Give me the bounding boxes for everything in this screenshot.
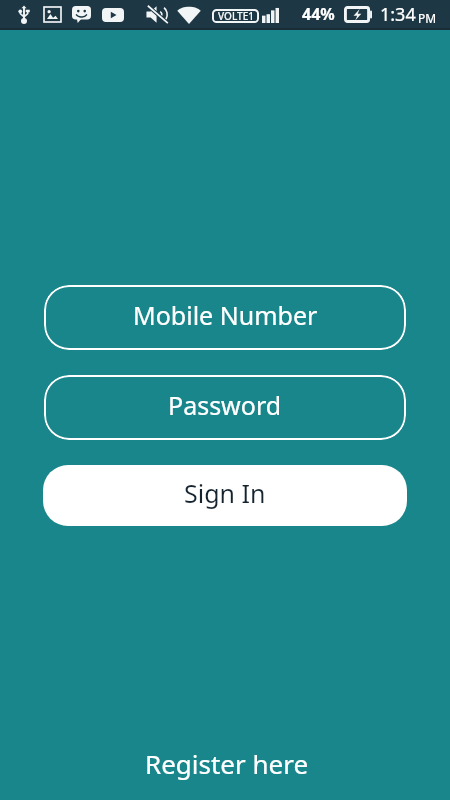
- staticText: Sign In: [184, 476, 266, 510]
- other: New message: [72, 6, 91, 23]
- other: YouTube: [102, 8, 124, 22]
- staticText: 44%: [302, 3, 335, 25]
- other: Ringer muted: [146, 5, 169, 24]
- other: Screenshot captured: [44, 7, 61, 22]
- other: USB connected: [18, 5, 30, 24]
- button[interactable]: Register here: [137, 741, 317, 786]
- button[interactable]: Mobile Number: [44, 285, 406, 350]
- other: VoLTE: [212, 9, 259, 23]
- other: Mobile signal: [262, 7, 279, 23]
- button[interactable]: Sign In: [43, 465, 407, 526]
- other: Battery charging: [344, 6, 372, 23]
- staticText: Mobile Number: [133, 298, 318, 332]
- staticText: VOLTE1: [218, 9, 254, 23]
- staticText: Password: [168, 388, 282, 422]
- button[interactable]: Password: [44, 375, 406, 440]
- staticText: PM: [418, 10, 437, 26]
- other: Wi-Fi: [177, 6, 201, 24]
- staticText: 1:34: [380, 2, 416, 27]
- staticText: Register here: [145, 746, 309, 781]
